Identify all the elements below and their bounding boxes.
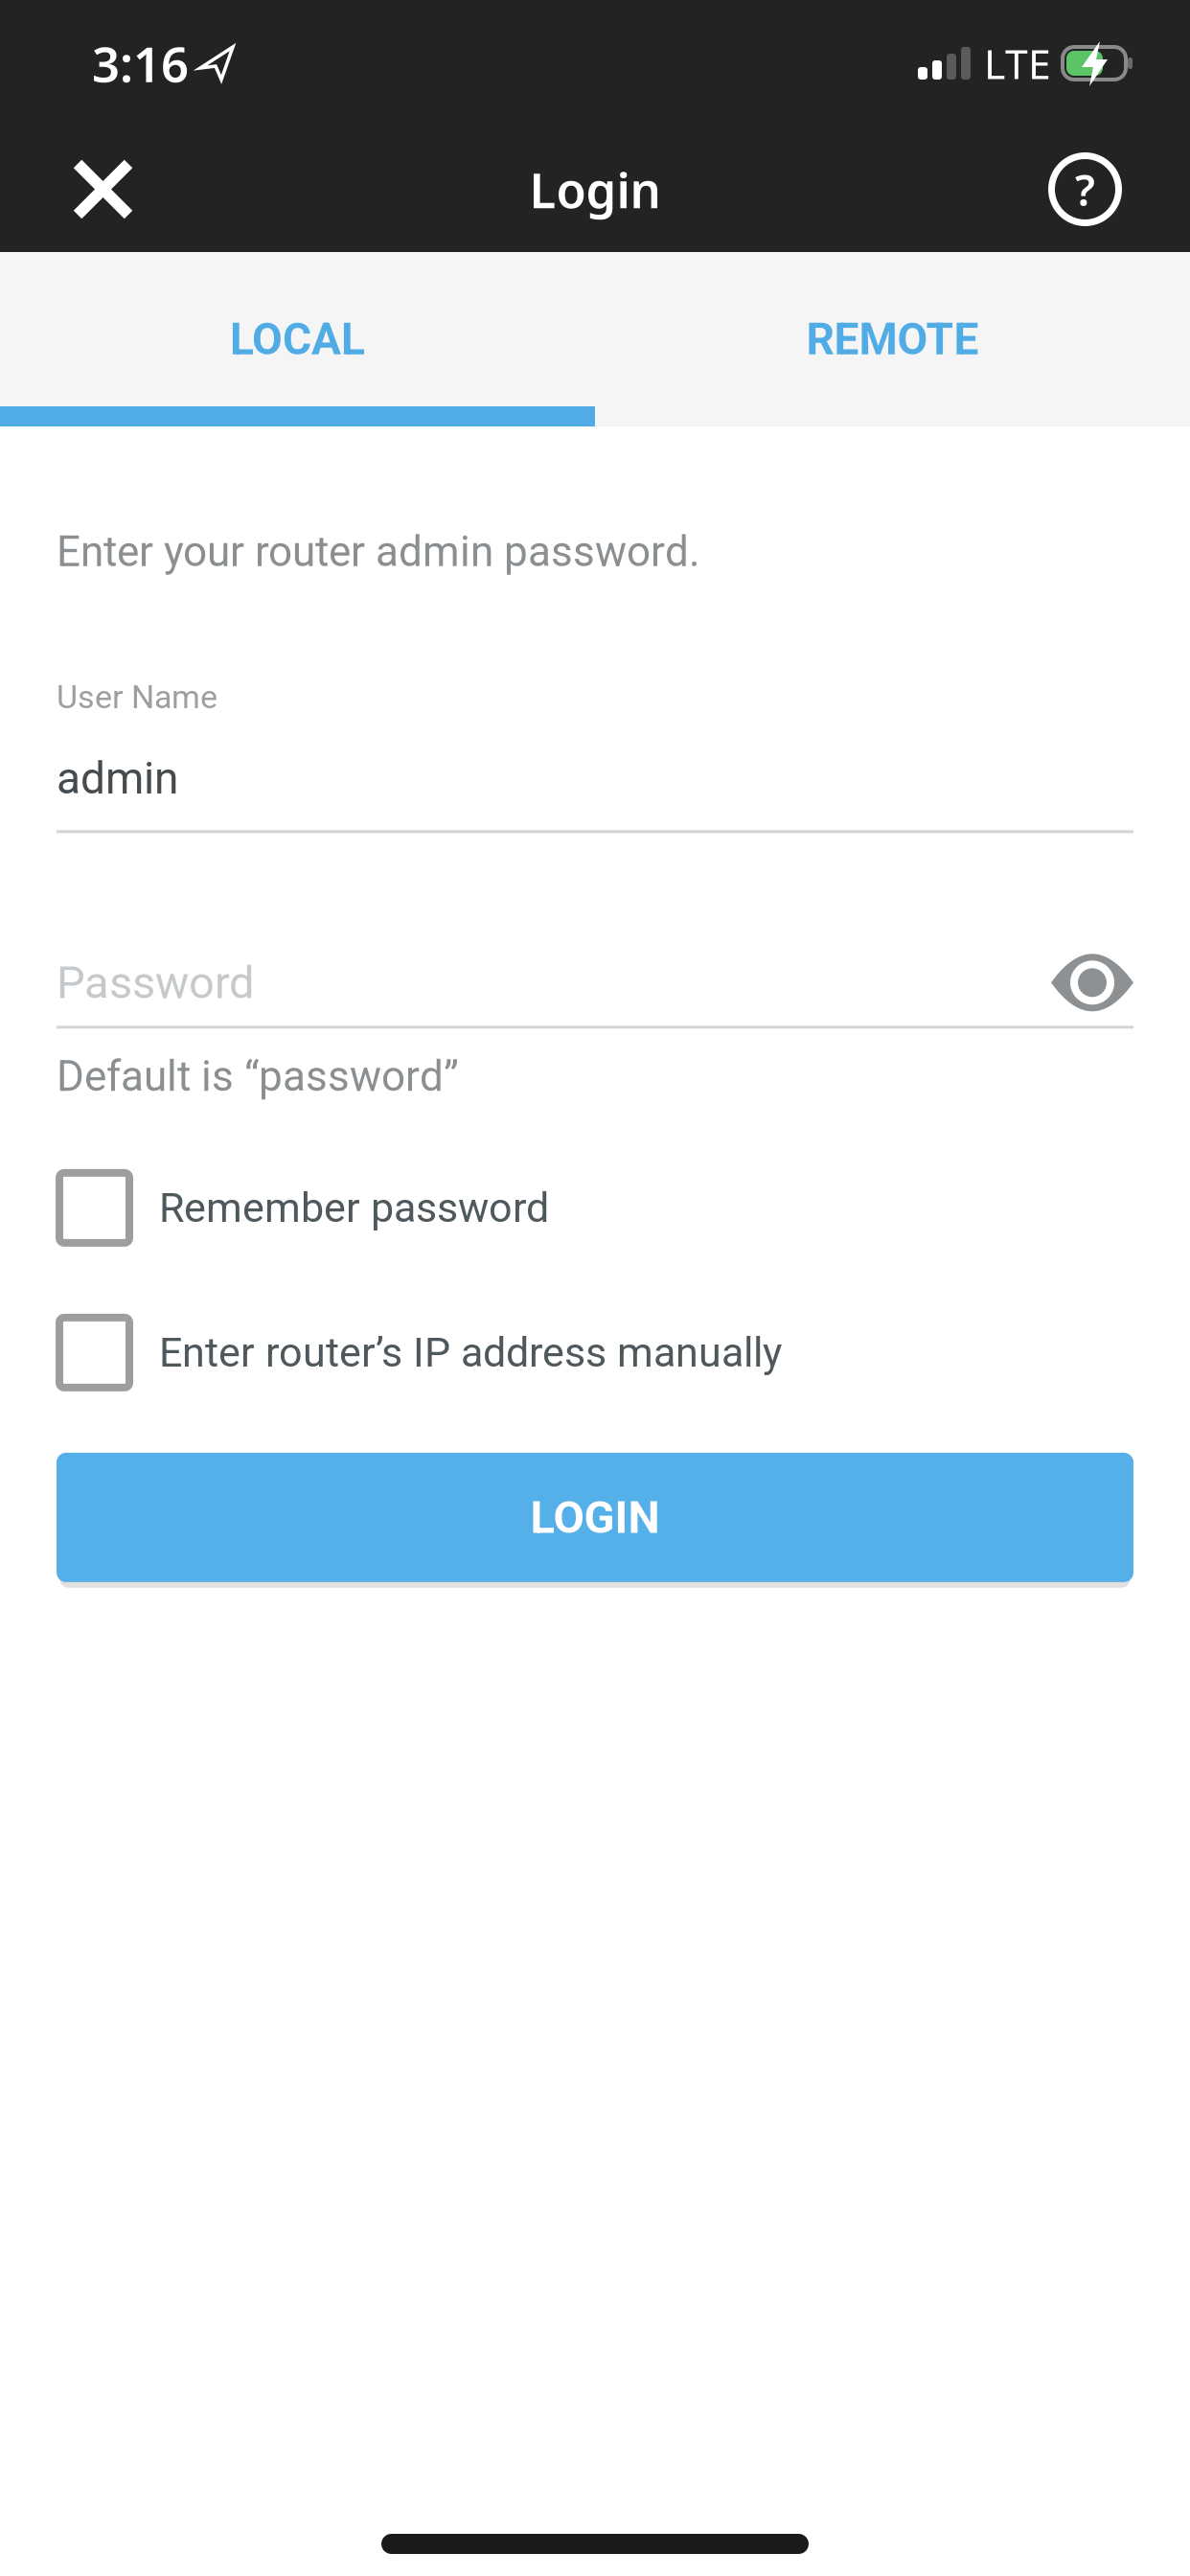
staticText: LOGIN xyxy=(530,1491,660,1544)
staticText: Enter your router admin password. xyxy=(57,527,700,577)
staticText: LOCAL xyxy=(230,313,365,365)
staticText: Login xyxy=(529,157,661,222)
staticText: ? xyxy=(1075,160,1095,218)
button[interactable]: Close xyxy=(0,160,132,218)
staticText: admin xyxy=(57,753,178,804)
button[interactable]: Help xyxy=(1048,152,1190,226)
button[interactable]: Enter router’s IP address manually xyxy=(57,1318,1190,1388)
button[interactable]: Remember password xyxy=(57,1173,1190,1243)
button[interactable]: REMOTE xyxy=(595,252,1190,426)
staticText: Remember password xyxy=(159,1184,549,1232)
staticText: User Name xyxy=(57,678,217,716)
staticText: REMOTE xyxy=(806,313,979,365)
button[interactable]: Show password xyxy=(1051,954,1133,1011)
staticText: LTE xyxy=(984,36,1051,90)
button[interactable]: LOGIN xyxy=(57,1453,1133,1588)
staticText: 3:16 xyxy=(92,31,189,96)
button[interactable]: LOCAL xyxy=(0,252,595,426)
staticText: Password xyxy=(57,956,255,1009)
staticText: Enter router’s IP address manually xyxy=(159,1328,782,1377)
staticText: Default is “password” xyxy=(57,1052,459,1101)
